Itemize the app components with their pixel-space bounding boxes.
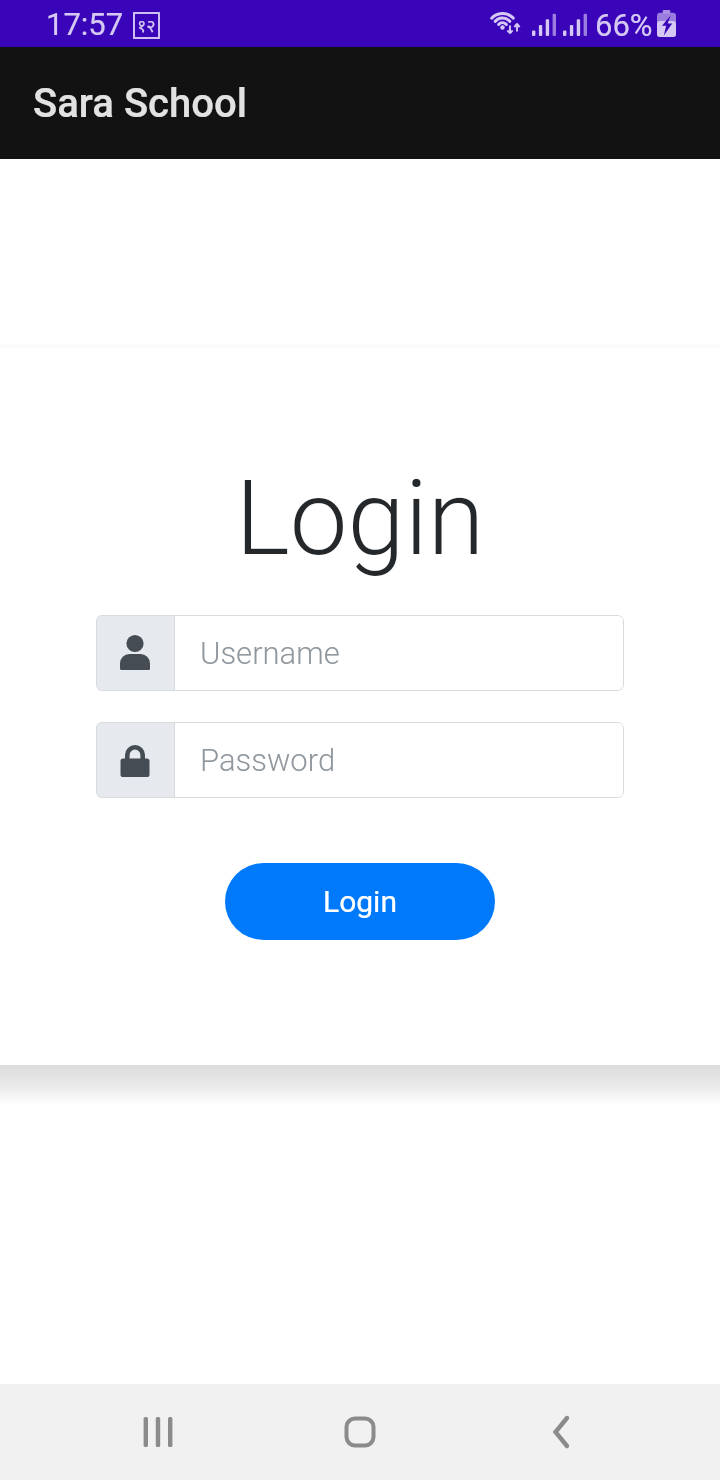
staticText: Username	[200, 635, 340, 671]
staticText: १२	[137, 13, 156, 38]
button[interactable]: Username	[96, 615, 624, 691]
other: Input language	[133, 12, 160, 39]
button[interactable]: Password	[96, 722, 624, 798]
staticText: Sara School	[33, 80, 248, 127]
staticText: Login	[235, 458, 485, 579]
staticText: 66%	[595, 7, 653, 43]
staticText: Password	[200, 742, 336, 778]
button[interactable]: Back	[521, 1384, 601, 1480]
button[interactable]: Login	[225, 863, 495, 940]
staticText: Login	[323, 884, 397, 919]
button[interactable]: Recent apps	[118, 1384, 198, 1480]
staticText: 17:57	[46, 6, 124, 42]
button[interactable]: Home	[320, 1384, 400, 1480]
